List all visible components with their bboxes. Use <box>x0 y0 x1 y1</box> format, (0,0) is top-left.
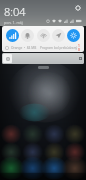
button[interactable]: Collapse notification shade <box>38 66 49 69</box>
button[interactable]: Settings <box>74 4 82 12</box>
button[interactable]: Orange • 84 MB <box>5 44 81 51</box>
button[interactable]: Flashlight <box>52 29 65 42</box>
button[interactable]: Sound <box>21 29 34 42</box>
button[interactable]: Wi-Fi <box>37 29 50 42</box>
button[interactable]: Brightness <box>67 29 80 42</box>
staticText: pon. 1. máj <box>4 20 23 25</box>
staticText: Orange • 84 MB <box>11 46 37 50</box>
staticText: 100 MB <box>78 44 81 51</box>
button[interactable] <box>2 53 84 64</box>
button[interactable]: Mobile data <box>6 29 19 42</box>
staticText: 8:04 <box>4 4 26 19</box>
staticText: Program bol prebúdzaný <box>40 46 78 50</box>
